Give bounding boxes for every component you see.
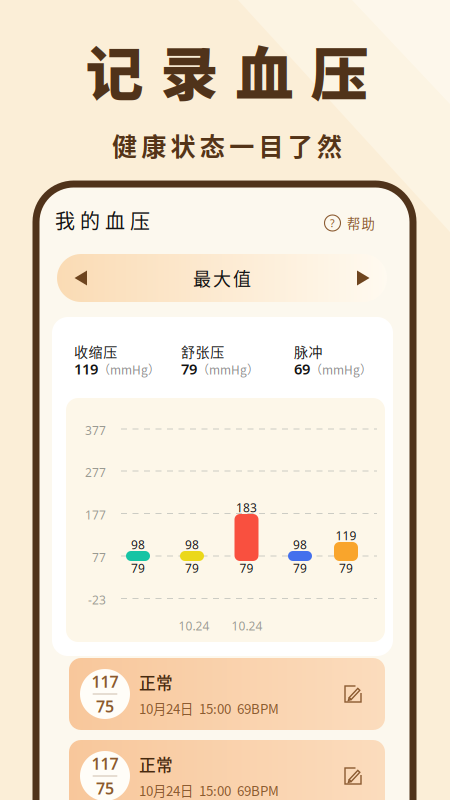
staticText: 79 bbox=[239, 560, 253, 576]
staticText: 舒张压 bbox=[181, 341, 224, 361]
staticText: 98 bbox=[131, 536, 145, 552]
staticText: 75 bbox=[96, 696, 114, 717]
button[interactable]: 最大值 bbox=[57, 254, 387, 302]
staticText: -23 bbox=[88, 592, 106, 608]
staticText: 69 bbox=[294, 359, 310, 378]
staticText: 记录血压 bbox=[85, 28, 368, 112]
staticText: 98 bbox=[293, 536, 307, 552]
staticText: 我的血压 bbox=[55, 205, 150, 234]
staticText: 177 bbox=[85, 507, 106, 523]
staticText: 79 bbox=[339, 560, 353, 576]
staticText: （mmHg） bbox=[310, 360, 372, 378]
staticText: 最大值 bbox=[193, 265, 251, 291]
staticText: （mmHg） bbox=[197, 360, 259, 378]
staticText: 健康状态一目了然 bbox=[112, 127, 342, 163]
button[interactable]: 117 bbox=[69, 740, 385, 800]
staticText: 10.24 bbox=[231, 618, 262, 634]
staticText: 75 bbox=[96, 778, 114, 799]
staticText: ? bbox=[330, 216, 335, 230]
staticText: 79 bbox=[293, 560, 307, 576]
staticText: 119 bbox=[74, 359, 98, 378]
staticText: 10月24日 15:00 69BPM bbox=[139, 698, 279, 718]
staticText: 79 bbox=[131, 560, 145, 576]
staticText: 98 bbox=[185, 536, 199, 552]
button[interactable]: ? bbox=[322, 212, 376, 234]
staticText: 正常 bbox=[139, 670, 173, 694]
staticText: 正常 bbox=[139, 752, 173, 776]
staticText: 脉冲 bbox=[294, 341, 323, 361]
staticText: 77 bbox=[92, 549, 106, 565]
staticText: 79 bbox=[185, 560, 199, 576]
staticText: 377 bbox=[85, 422, 106, 438]
staticText: 收缩压 bbox=[74, 341, 117, 361]
staticText: 10.24 bbox=[178, 618, 209, 634]
staticText: 119 bbox=[335, 527, 356, 543]
staticText: 10月24日 15:00 69BPM bbox=[139, 780, 279, 800]
staticText: 277 bbox=[85, 464, 106, 480]
staticText: 117 bbox=[91, 671, 118, 692]
staticText: （mmHg） bbox=[98, 360, 160, 378]
button[interactable]: 117 bbox=[69, 658, 385, 730]
staticText: 帮助 bbox=[347, 213, 374, 233]
staticText: 117 bbox=[91, 753, 118, 774]
staticText: 79 bbox=[181, 359, 197, 378]
staticText: 183 bbox=[236, 499, 257, 515]
